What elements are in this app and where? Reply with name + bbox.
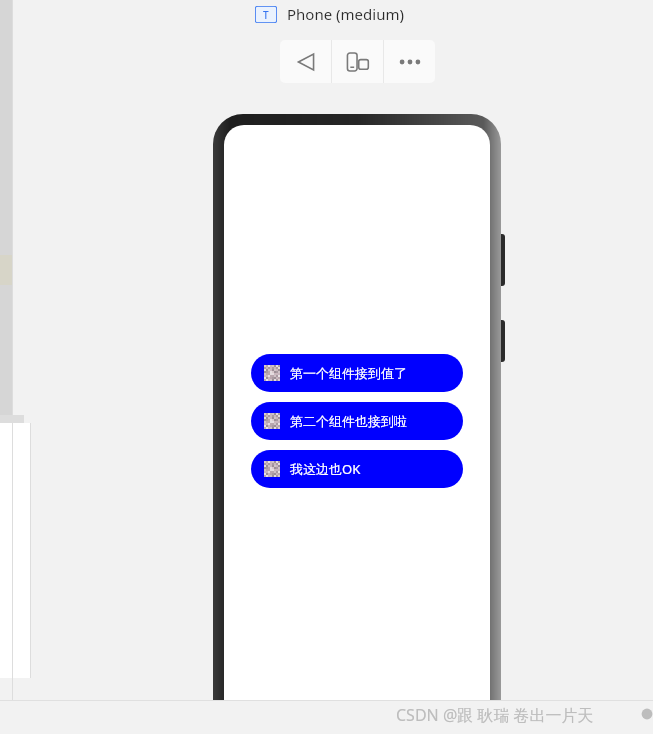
button[interactable]: 我这边也OK xyxy=(251,450,463,488)
staticText: 第一个组件接到值了 xyxy=(290,365,407,381)
staticText: 我这边也OK xyxy=(290,460,361,478)
button[interactable]: Select device xyxy=(332,40,383,83)
button[interactable]: 第一个组件接到值了 xyxy=(251,354,463,392)
staticText: 第二个组件也接到啦 xyxy=(290,413,407,429)
staticText: CSDN @跟 耿瑞 卷出一片天 xyxy=(396,704,594,726)
button[interactable]: Back xyxy=(280,40,331,83)
staticText: Phone (medium) xyxy=(287,4,404,24)
staticText: T xyxy=(263,8,269,22)
button[interactable]: More options xyxy=(384,40,435,83)
button[interactable]: T xyxy=(255,4,404,24)
button[interactable]: 第二个组件也接到啦 xyxy=(251,402,463,440)
